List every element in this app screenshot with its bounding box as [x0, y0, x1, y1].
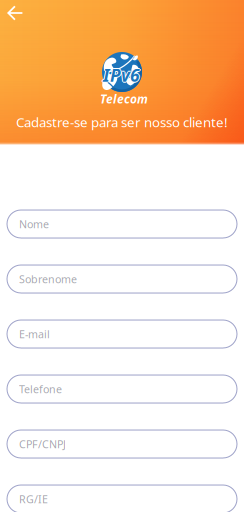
staticText: Sobrenome	[19, 272, 77, 286]
staticText: Nome	[19, 217, 49, 231]
staticText: IPv6	[104, 63, 141, 86]
staticText: Telecom	[100, 91, 148, 107]
staticText: RG/IE	[19, 492, 48, 506]
staticText: Cadastre-se para ser nosso cliente!	[16, 113, 228, 131]
button[interactable]: Back	[0, 0, 34, 32]
button[interactable]: CPF/CNPJ	[7, 430, 237, 458]
button[interactable]: RG/IE	[7, 485, 237, 512]
button[interactable]: Nome	[7, 210, 237, 238]
staticText: CPF/CNPJ	[19, 437, 66, 451]
button[interactable]: Telefone	[7, 375, 237, 403]
button[interactable]: Sobrenome	[7, 265, 237, 293]
staticText: IPv6	[102, 63, 139, 86]
staticText: Telefone	[19, 382, 62, 396]
staticText: IPv6	[103, 62, 140, 85]
staticText: IPv6	[103, 63, 140, 86]
staticText: E-mail	[19, 327, 50, 341]
button[interactable]: E-mail	[7, 320, 237, 348]
staticText: IPv6	[103, 64, 140, 87]
